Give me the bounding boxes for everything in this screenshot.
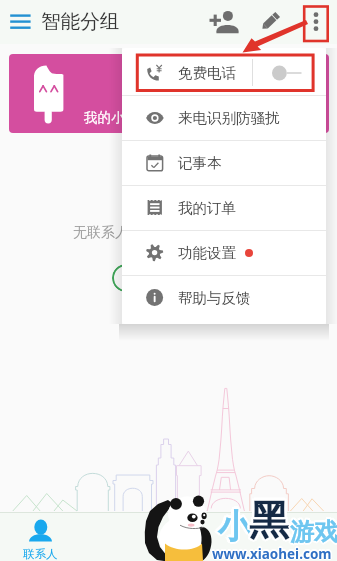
staticText: 免费电话 [178, 64, 236, 82]
staticText: www.xiaohei.com [213, 545, 333, 561]
staticText: 智能分组 [41, 9, 120, 34]
staticText: 游戏 [289, 515, 337, 545]
button[interactable]: More options [304, 6, 328, 38]
button[interactable]: 我的订单 [122, 186, 326, 230]
staticText: 游戏 [288, 517, 336, 547]
staticText: 我的订单 [178, 199, 236, 217]
staticText: www.xiaohei.com [211, 544, 331, 561]
staticText: 联系人 [23, 547, 58, 561]
staticText: 黑 [251, 495, 291, 545]
staticText: www.xiaohei.com [211, 545, 331, 561]
staticText: 游戏 [290, 515, 337, 545]
button[interactable]: 联系人 [8, 512, 72, 561]
staticText: www.xiaohei.com [213, 545, 333, 561]
staticText: 小 [215, 506, 248, 548]
staticText: 游戏 [292, 517, 337, 547]
staticText: www.xiaohei.com [212, 546, 332, 561]
staticText: 小 [218, 506, 251, 548]
staticText: 黑 [247, 495, 287, 545]
staticText: www.xiaohei.com [213, 544, 333, 561]
staticText: 游戏 [289, 518, 337, 548]
staticText: 功能设置 [178, 244, 236, 262]
staticText: 小 [219, 507, 252, 549]
button[interactable]: 记事本 [122, 141, 326, 185]
staticText: 小 [218, 503, 251, 545]
staticText: 无联系人，快来添加联系人吧 [73, 224, 255, 242]
staticText: 小 [216, 507, 249, 549]
button[interactable]: 新建联系人 [112, 264, 225, 292]
staticText: 游戏 [290, 519, 337, 549]
staticText: 来电识别防骚扰 [178, 109, 280, 127]
staticText: 帮助与反馈 [178, 289, 251, 307]
staticText: 黑 [251, 496, 291, 546]
staticText: 游戏 [291, 518, 337, 548]
staticText: 黑 [249, 495, 289, 545]
button[interactable]: 来电识别防骚扰 [122, 96, 326, 140]
staticText: 黑 [251, 493, 291, 543]
staticText: www.xiaohei.com [212, 545, 332, 561]
button[interactable]: 免费电话 [122, 50, 326, 95]
staticText: 小 [220, 506, 253, 548]
staticText: 黑 [249, 497, 289, 547]
staticText: 新建联系人 [136, 270, 201, 286]
staticText: www.xiaohei.com [212, 543, 332, 561]
staticText: 小 [218, 508, 251, 550]
button[interactable]: Edit [261, 9, 283, 31]
button[interactable]: 我的小伙伴 [9, 54, 329, 133]
staticText: 小 [216, 504, 249, 546]
staticText: 游戏 [290, 517, 337, 547]
staticText: 我的小伙伴 [84, 109, 152, 126]
button[interactable]: Add contact [205, 6, 241, 38]
staticText: 黑 [249, 492, 289, 542]
staticText: 黑 [247, 496, 287, 546]
staticText: 游戏 [291, 515, 337, 545]
button[interactable]: 帮助与反馈 [122, 276, 326, 320]
staticText: 小 [219, 504, 252, 546]
button[interactable]: 功能设置 [122, 231, 326, 275]
button[interactable]: Navigation menu [0, 0, 40, 44]
staticText: 黑 [247, 493, 287, 543]
staticText: www.xiaohei.com [211, 545, 331, 561]
staticText: 记事本 [178, 154, 222, 172]
